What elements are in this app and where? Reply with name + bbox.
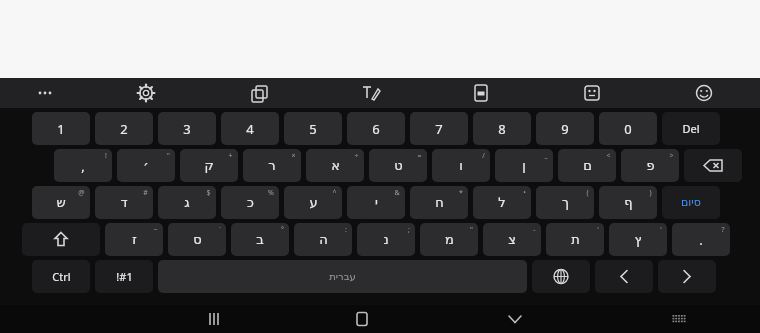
- staticText: ה: [319, 232, 328, 247]
- staticText: +: [228, 151, 233, 161]
- staticText: ש: [56, 195, 66, 210]
- button[interactable]: Ctrl: [32, 260, 90, 293]
- button[interactable]: Home: [338, 305, 386, 333]
- button[interactable]: •: [473, 186, 531, 219]
- staticText: ×: [291, 151, 296, 161]
- button[interactable]: (: [536, 186, 594, 219]
- button[interactable]: #: [95, 186, 153, 219]
- button[interactable]: :: [294, 223, 352, 256]
- button[interactable]: Handwriting: [356, 78, 384, 108]
- staticText: •: [523, 188, 526, 198]
- staticText: ^: [332, 188, 337, 198]
- staticText: ג: [184, 195, 190, 210]
- button[interactable]: 7: [410, 112, 468, 145]
- button[interactable]: Previous: [595, 260, 653, 293]
- staticText: ': [597, 225, 599, 235]
- button[interactable]: &: [347, 186, 405, 219]
- button[interactable]: More options: [31, 78, 59, 108]
- button[interactable]: %: [221, 186, 279, 219]
- button[interactable]: ): [599, 186, 657, 219]
- button[interactable]: !: [54, 149, 112, 182]
- staticText: :: [345, 225, 347, 235]
- staticText: ו: [459, 158, 463, 173]
- button[interactable]: ^: [284, 186, 342, 219]
- staticText: 2: [120, 120, 128, 138]
- button[interactable]: ;: [357, 223, 415, 256]
- button[interactable]: 5: [284, 112, 342, 145]
- button[interactable]: _: [495, 149, 553, 182]
- button[interactable]: Settings: [132, 78, 160, 108]
- button[interactable]: <: [558, 149, 616, 182]
- staticText: 5: [309, 120, 317, 138]
- button[interactable]: 3: [158, 112, 216, 145]
- staticText: *: [459, 188, 463, 198]
- staticText: ע: [309, 195, 318, 210]
- staticText: י: [375, 195, 378, 210]
- staticText: 3: [183, 120, 191, 138]
- button[interactable]: 8: [473, 112, 531, 145]
- staticText: =: [417, 151, 422, 161]
- button[interactable]: @: [32, 186, 90, 219]
- button[interactable]: *: [410, 186, 468, 219]
- staticText: Ctrl: [52, 269, 71, 284]
- button[interactable]: ~: [105, 223, 163, 256]
- staticText: @: [78, 188, 85, 198]
- staticText: 4: [246, 120, 254, 138]
- staticText: ד: [120, 195, 128, 210]
- staticText: פ: [646, 158, 655, 173]
- staticText: ת: [571, 232, 580, 247]
- button[interactable]: Backspace: [684, 149, 742, 182]
- button[interactable]: Change language: [532, 260, 590, 293]
- staticText: ׳: [143, 158, 149, 173]
- staticText: ז: [132, 232, 137, 247]
- button[interactable]: °: [231, 223, 289, 256]
- staticText: ץ: [634, 232, 642, 247]
- button[interactable]: =: [369, 149, 427, 182]
- button[interactable]: ×: [243, 149, 301, 182]
- button[interactable]: 2: [95, 112, 153, 145]
- button[interactable]: $: [158, 186, 216, 219]
- staticText: ך: [562, 195, 569, 210]
- button[interactable]: ": [420, 223, 478, 256]
- button[interactable]: Del: [662, 112, 720, 145]
- staticText: 8: [498, 120, 506, 138]
- staticText: 7: [435, 120, 443, 138]
- staticText: ח: [435, 195, 444, 210]
- button[interactable]: 0: [599, 112, 657, 145]
- button[interactable]: Hide keyboard: [491, 305, 539, 333]
- staticText: ": [167, 151, 170, 161]
- button[interactable]: סיום: [662, 186, 720, 219]
- button[interactable]: >: [621, 149, 679, 182]
- button[interactable]: Shift: [22, 223, 100, 256]
- staticText: 9: [561, 120, 569, 138]
- button[interactable]: Recent apps: [190, 305, 238, 333]
- button[interactable]: עברית: [158, 260, 527, 293]
- button[interactable]: Next: [658, 260, 716, 293]
- button[interactable]: Keyboard layout: [659, 305, 699, 333]
- button[interactable]: ': [609, 223, 667, 256]
- staticText: נ: [383, 232, 389, 247]
- button[interactable]: `: [168, 223, 226, 256]
- button[interactable]: 9: [536, 112, 594, 145]
- button[interactable]: ': [546, 223, 604, 256]
- button[interactable]: Keyboard modes: [467, 78, 495, 108]
- button[interactable]: 4: [221, 112, 279, 145]
- button[interactable]: ": [117, 149, 175, 182]
- button[interactable]: +: [180, 149, 238, 182]
- button[interactable]: 1: [32, 112, 90, 145]
- button[interactable]: ?: [672, 223, 730, 256]
- staticText: !#1: [116, 269, 133, 284]
- staticText: 1: [57, 120, 65, 138]
- button[interactable]: !#1: [95, 260, 153, 293]
- staticText: ף: [624, 195, 633, 210]
- staticText: ": [470, 225, 473, 235]
- button[interactable]: Stickers: [578, 78, 606, 108]
- button[interactable]: ÷: [306, 149, 364, 182]
- staticText: Del: [682, 121, 700, 136]
- button[interactable]: /: [432, 149, 490, 182]
- button[interactable]: Emoji: [690, 78, 718, 108]
- button[interactable]: -: [483, 223, 541, 256]
- button[interactable]: 6: [347, 112, 405, 145]
- staticText: כ: [247, 195, 254, 210]
- button[interactable]: Clipboard: [245, 78, 273, 108]
